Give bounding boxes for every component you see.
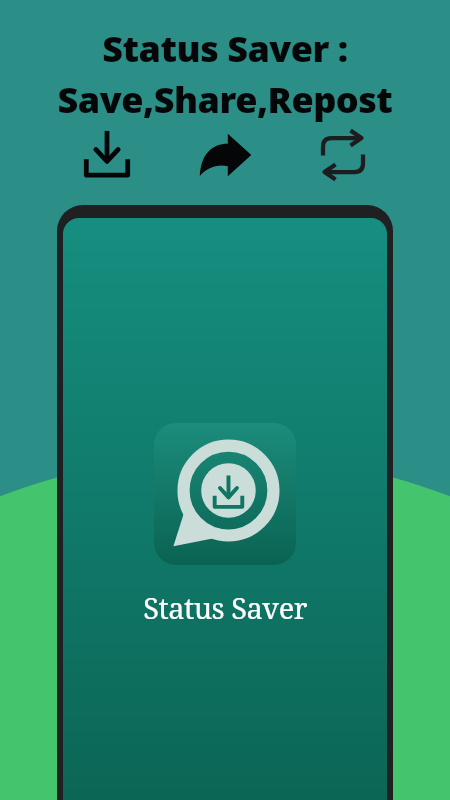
button[interactable]: Share	[192, 122, 258, 188]
button[interactable]: Repost	[310, 122, 376, 188]
staticText: Status Saver :	[0, 24, 450, 73]
staticText: Save,Share,Repost	[0, 75, 450, 124]
staticText: Status Saver	[63, 588, 387, 627]
button[interactable]: Status Saver app icon	[154, 423, 296, 565]
button[interactable]: Save	[74, 122, 140, 188]
